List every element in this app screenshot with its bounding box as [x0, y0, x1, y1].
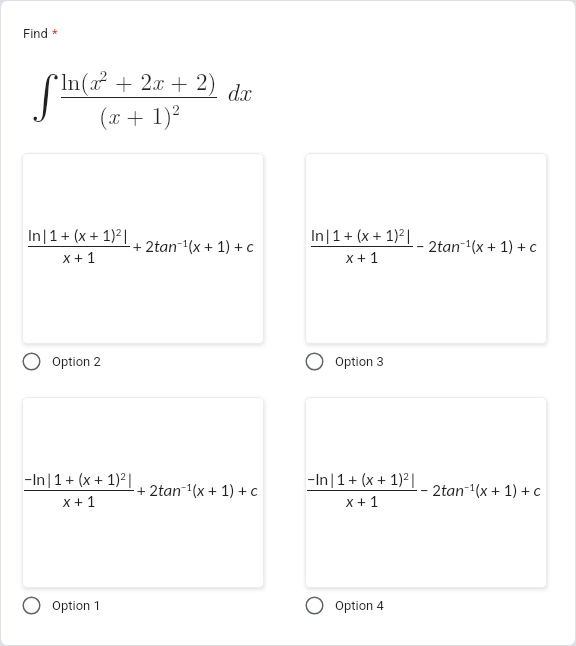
- staticText: Option 2: [52, 354, 101, 369]
- staticText: ln|1 + (x + 1)2|: [28, 225, 130, 246]
- staticText: + 2tan−1(x + 1) + c: [133, 236, 254, 257]
- button[interactable]: Select Option 4: [305, 596, 384, 615]
- staticText: x + 1: [63, 491, 96, 512]
- button[interactable]: −ln|1 + (x + 1)2|: [305, 397, 547, 588]
- other: Select Option 1: [22, 596, 41, 615]
- staticText: Find: [23, 26, 48, 41]
- staticText: + 2tan−1(x + 1) + c: [137, 480, 258, 501]
- staticText: −ln|1 + (x + 1)2|: [307, 469, 417, 490]
- other: Select Option 3: [305, 352, 324, 371]
- button[interactable]: ln|1 + (x + 1)2|: [305, 153, 547, 344]
- staticText: Option 1: [52, 598, 101, 613]
- button[interactable]: −ln|1 + (x + 1)2|: [22, 397, 264, 588]
- staticText: x + 1: [346, 491, 379, 512]
- staticText: (x + 1)2: [99, 98, 180, 131]
- staticText: dx: [226, 73, 251, 108]
- staticText: ln|1 + (x + 1)2|: [311, 225, 413, 246]
- staticText: x + 1: [63, 247, 96, 268]
- button[interactable]: ln|1 + (x + 1)2|: [22, 153, 264, 344]
- staticText: Option 3: [335, 354, 384, 369]
- button[interactable]: Find: [23, 26, 58, 41]
- staticText: −ln|1 + (x + 1)2|: [24, 469, 134, 490]
- staticText: x + 1: [346, 247, 379, 268]
- staticText: *: [52, 26, 58, 41]
- staticText: − 2tan−1(x + 1) + c: [420, 480, 541, 501]
- staticText: ln(x2 + 2x + 2): [61, 64, 217, 97]
- button[interactable]: Select Option 2: [22, 352, 101, 371]
- other: Select Option 2: [22, 352, 41, 371]
- staticText: ∫: [31, 74, 55, 118]
- button[interactable]: Select Option 1: [22, 596, 101, 615]
- button[interactable]: Select Option 3: [305, 352, 384, 371]
- other: Select Option 4: [305, 596, 324, 615]
- staticText: Option 4: [335, 598, 384, 613]
- staticText: − 2tan−1(x + 1) + c: [416, 236, 537, 257]
